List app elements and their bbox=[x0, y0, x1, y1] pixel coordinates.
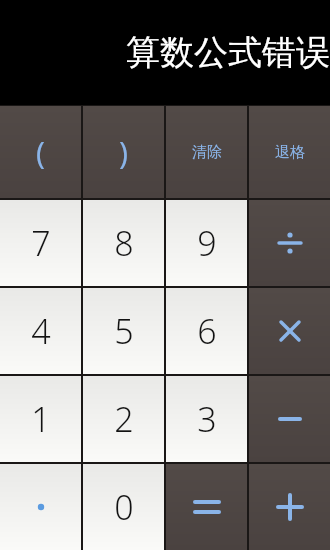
button[interactable]: 4 bbox=[0, 288, 81, 374]
staticText: 8 bbox=[114, 220, 134, 266]
button[interactable]: 8 bbox=[83, 200, 164, 286]
button[interactable]: Close parenthesis bbox=[83, 106, 164, 198]
staticText: ( bbox=[36, 132, 45, 173]
staticText: 退格 bbox=[275, 143, 305, 162]
staticText: 2 bbox=[114, 396, 134, 442]
staticText: 算数公式错误 bbox=[126, 31, 330, 74]
button[interactable]: Divide bbox=[249, 200, 330, 286]
button[interactable]: Multiply bbox=[249, 288, 330, 374]
button[interactable]: 清除 bbox=[166, 106, 247, 198]
button[interactable]: Add bbox=[249, 464, 330, 550]
button[interactable]: 7 bbox=[0, 200, 81, 286]
staticText: ) bbox=[119, 132, 128, 173]
staticText: 7 bbox=[31, 220, 51, 266]
button[interactable]: Equals bbox=[166, 464, 247, 550]
button[interactable]: 5 bbox=[83, 288, 164, 374]
button[interactable]: 9 bbox=[166, 200, 247, 286]
button[interactable]: 1 bbox=[0, 376, 81, 462]
staticText: 1 bbox=[31, 396, 51, 442]
staticText: 5 bbox=[114, 308, 134, 354]
staticText: 3 bbox=[197, 396, 217, 442]
staticText: 4 bbox=[31, 308, 51, 354]
button[interactable]: Decimal point bbox=[0, 464, 81, 550]
staticText: 清除 bbox=[192, 143, 222, 162]
staticText: 0 bbox=[114, 484, 134, 530]
button[interactable]: 2 bbox=[83, 376, 164, 462]
button[interactable]: Open parenthesis bbox=[0, 106, 81, 198]
staticText: 6 bbox=[197, 308, 217, 354]
button[interactable]: Subtract bbox=[249, 376, 330, 462]
button[interactable]: 6 bbox=[166, 288, 247, 374]
staticText: 9 bbox=[197, 220, 217, 266]
button[interactable]: 3 bbox=[166, 376, 247, 462]
button[interactable]: 0 bbox=[83, 464, 164, 550]
button[interactable]: 退格 bbox=[249, 106, 330, 198]
